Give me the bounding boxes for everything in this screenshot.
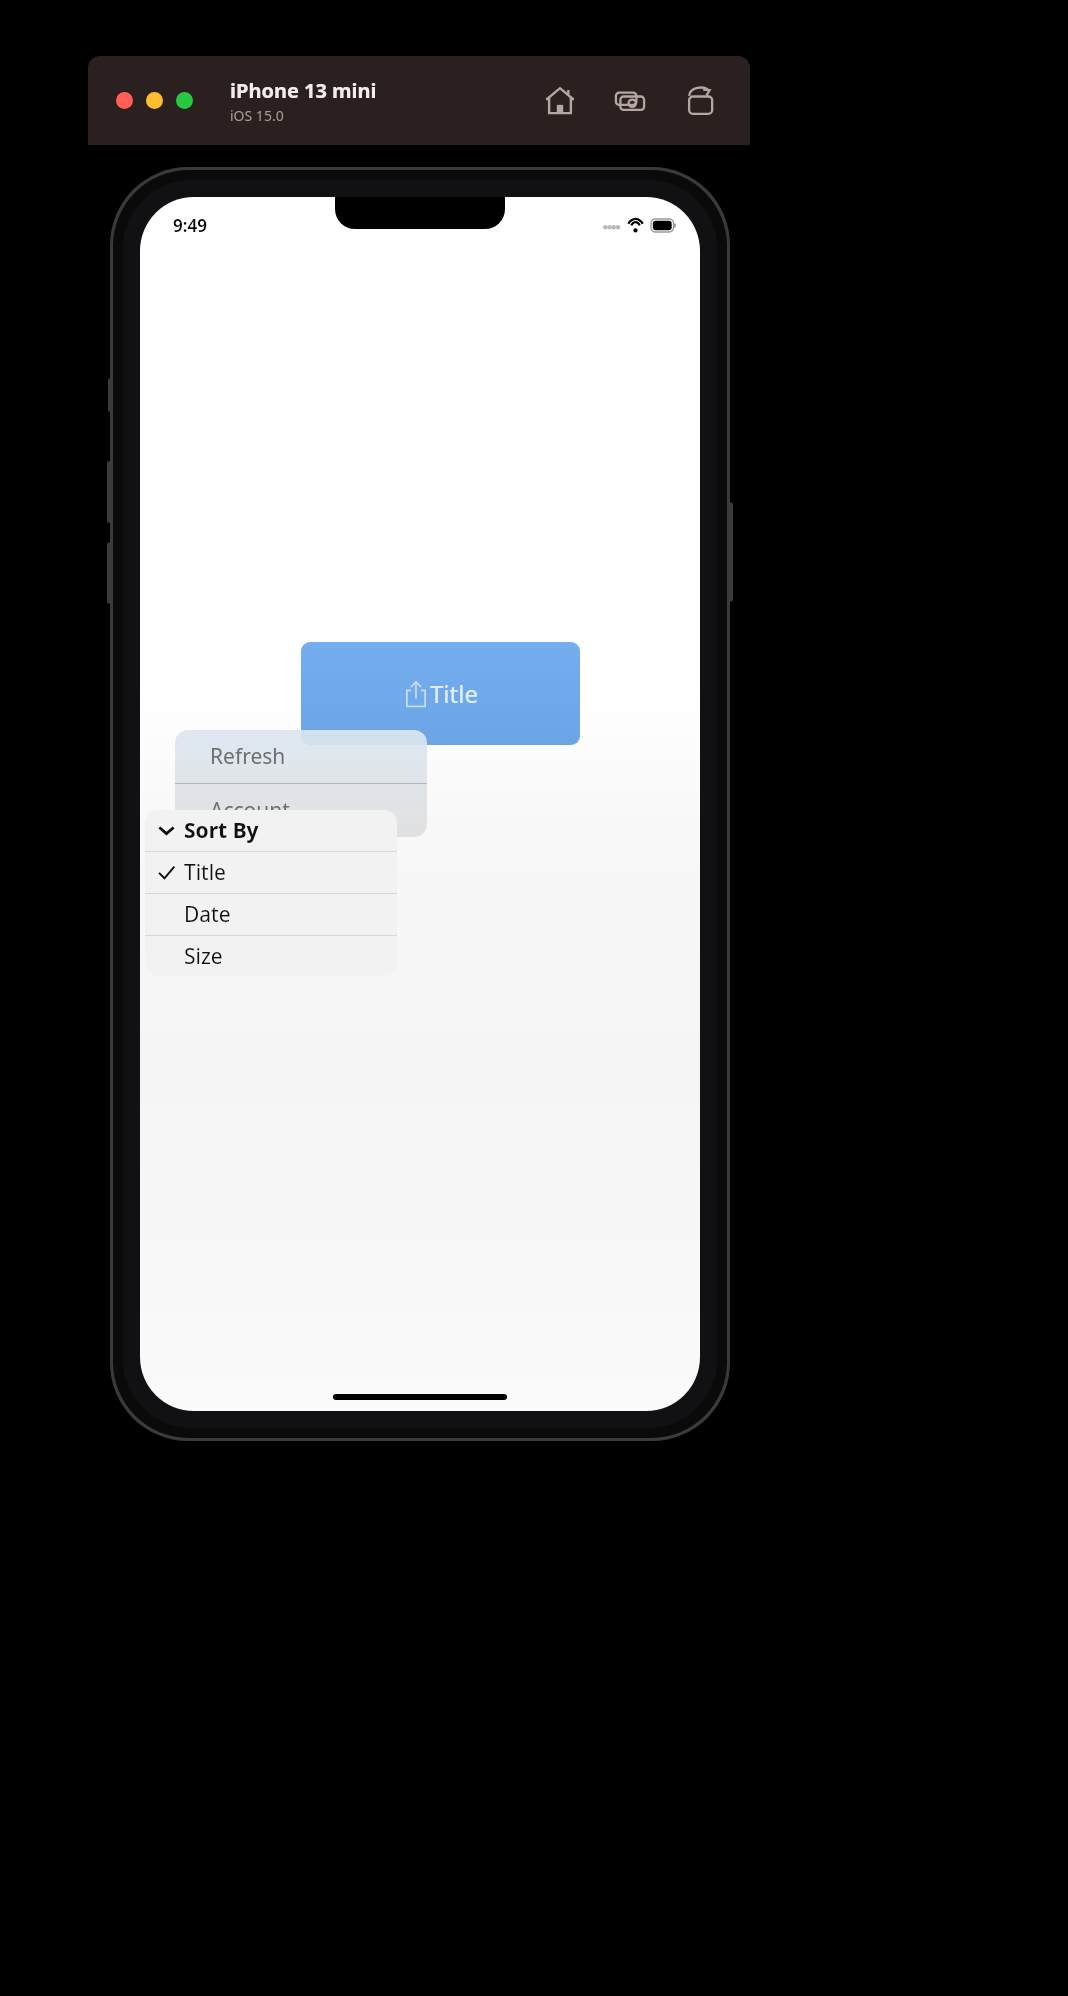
button[interactable]: Volume down — [107, 542, 113, 604]
staticText: Date — [184, 900, 231, 929]
button[interactable]: Close — [116, 92, 133, 109]
staticText: Size — [184, 942, 223, 971]
button[interactable]: Refresh — [175, 730, 427, 783]
button[interactable]: Sort By — [145, 810, 397, 851]
button[interactable]: Zoom — [176, 92, 193, 109]
button[interactable]: Title — [145, 852, 397, 893]
button[interactable]: Account — [175, 784, 427, 837]
staticText: Account — [210, 796, 290, 825]
button[interactable]: Volume up — [107, 461, 113, 523]
button[interactable]: Power — [727, 502, 733, 602]
staticText: Title — [184, 858, 226, 887]
button[interactable]: Title — [301, 642, 580, 745]
staticText: Title — [430, 677, 478, 710]
staticText: iOS 15.0 — [230, 106, 284, 125]
button[interactable]: Mute — [108, 378, 113, 412]
button[interactable]: Minimise — [146, 92, 163, 109]
staticText: iPhone 13 mini — [230, 77, 377, 104]
staticText: 9:49 — [173, 214, 207, 237]
button[interactable]: Home — [540, 81, 580, 121]
button[interactable]: Rotate — [680, 81, 720, 121]
staticText: Refresh — [210, 742, 286, 771]
button[interactable]: Screenshot — [610, 81, 650, 121]
staticText: Sort By — [184, 816, 259, 845]
button[interactable]: Date — [145, 894, 397, 935]
button[interactable]: Size — [145, 936, 397, 976]
